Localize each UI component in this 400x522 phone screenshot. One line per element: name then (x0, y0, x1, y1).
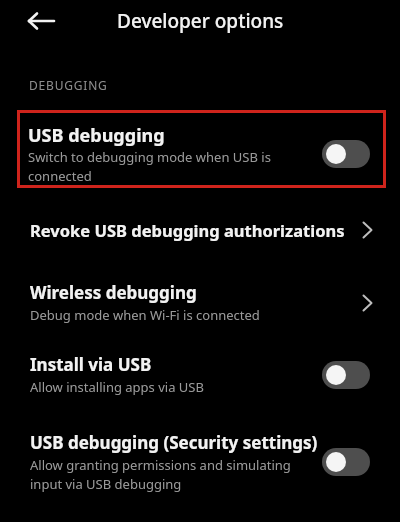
staticText: USB debugging (28, 123, 165, 148)
staticText: USB debugging (Security settings) (30, 431, 318, 454)
button[interactable]: USB debugging (17, 110, 386, 188)
button[interactable] (322, 140, 370, 168)
staticText: Allow installing apps via USB (30, 378, 204, 396)
button[interactable]: Wireless debugging (0, 281, 400, 324)
staticText: Switch to debugging mode when USB is con… (28, 148, 271, 185)
staticText: Allow granting permissions and simulatin… (30, 456, 291, 493)
button[interactable]: Revoke USB debugging authorizations (0, 219, 400, 241)
staticText: Debug mode when Wi-Fi is connected (30, 306, 260, 324)
staticText: Install via USB (30, 353, 152, 376)
button[interactable]: Install via USB (0, 353, 400, 396)
staticText: Revoke USB debugging authorizations (30, 219, 362, 241)
button[interactable] (322, 361, 370, 389)
staticText: DEBUGGING (29, 77, 108, 93)
button[interactable]: USB debugging (Security settings) (0, 431, 400, 493)
button[interactable] (24, 4, 58, 38)
staticText: Developer options (117, 8, 284, 34)
staticText: Wireless debugging (30, 281, 197, 304)
button[interactable] (322, 448, 370, 476)
